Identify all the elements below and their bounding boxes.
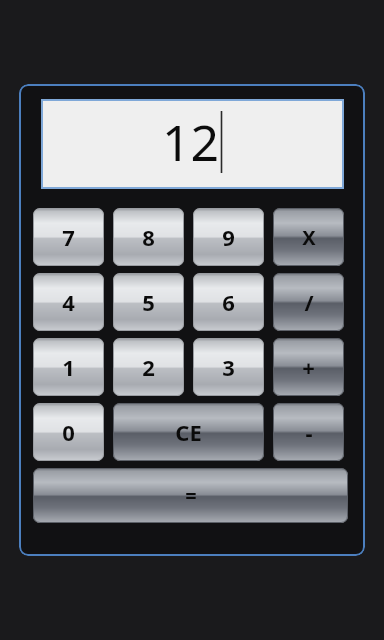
button[interactable]: CE <box>113 403 264 461</box>
staticText: 7 <box>62 222 75 252</box>
staticText: 9 <box>222 222 235 252</box>
staticText: CE <box>175 417 202 447</box>
staticText: 2 <box>142 352 155 382</box>
button[interactable]: 6 <box>193 273 264 331</box>
staticText: / <box>304 287 314 317</box>
staticText: - <box>305 417 313 447</box>
button[interactable]: X <box>273 208 344 266</box>
staticText: 8 <box>142 222 155 252</box>
button[interactable]: = <box>33 468 348 523</box>
button[interactable]: Calculator display <box>43 101 342 187</box>
staticText: 3 <box>222 352 235 382</box>
staticText: 6 <box>222 287 235 317</box>
button[interactable]: + <box>273 338 344 396</box>
button[interactable]: 2 <box>113 338 184 396</box>
button[interactable]: 5 <box>113 273 184 331</box>
button[interactable]: 8 <box>113 208 184 266</box>
staticText: 5 <box>142 287 155 317</box>
staticText: + <box>302 352 315 382</box>
staticText: = <box>185 482 197 509</box>
button[interactable]: - <box>273 403 344 461</box>
button[interactable]: 4 <box>33 273 104 331</box>
button[interactable]: 7 <box>33 208 104 266</box>
button[interactable]: 9 <box>193 208 264 266</box>
staticText: 1 <box>62 352 75 382</box>
staticText: 12 <box>162 108 220 176</box>
staticText: X <box>302 224 316 251</box>
button[interactable]: / <box>273 273 344 331</box>
staticText: 0 <box>62 417 75 447</box>
button[interactable]: 1 <box>33 338 104 396</box>
staticText: 4 <box>62 287 75 317</box>
button[interactable]: 0 <box>33 403 104 461</box>
button[interactable]: 3 <box>193 338 264 396</box>
